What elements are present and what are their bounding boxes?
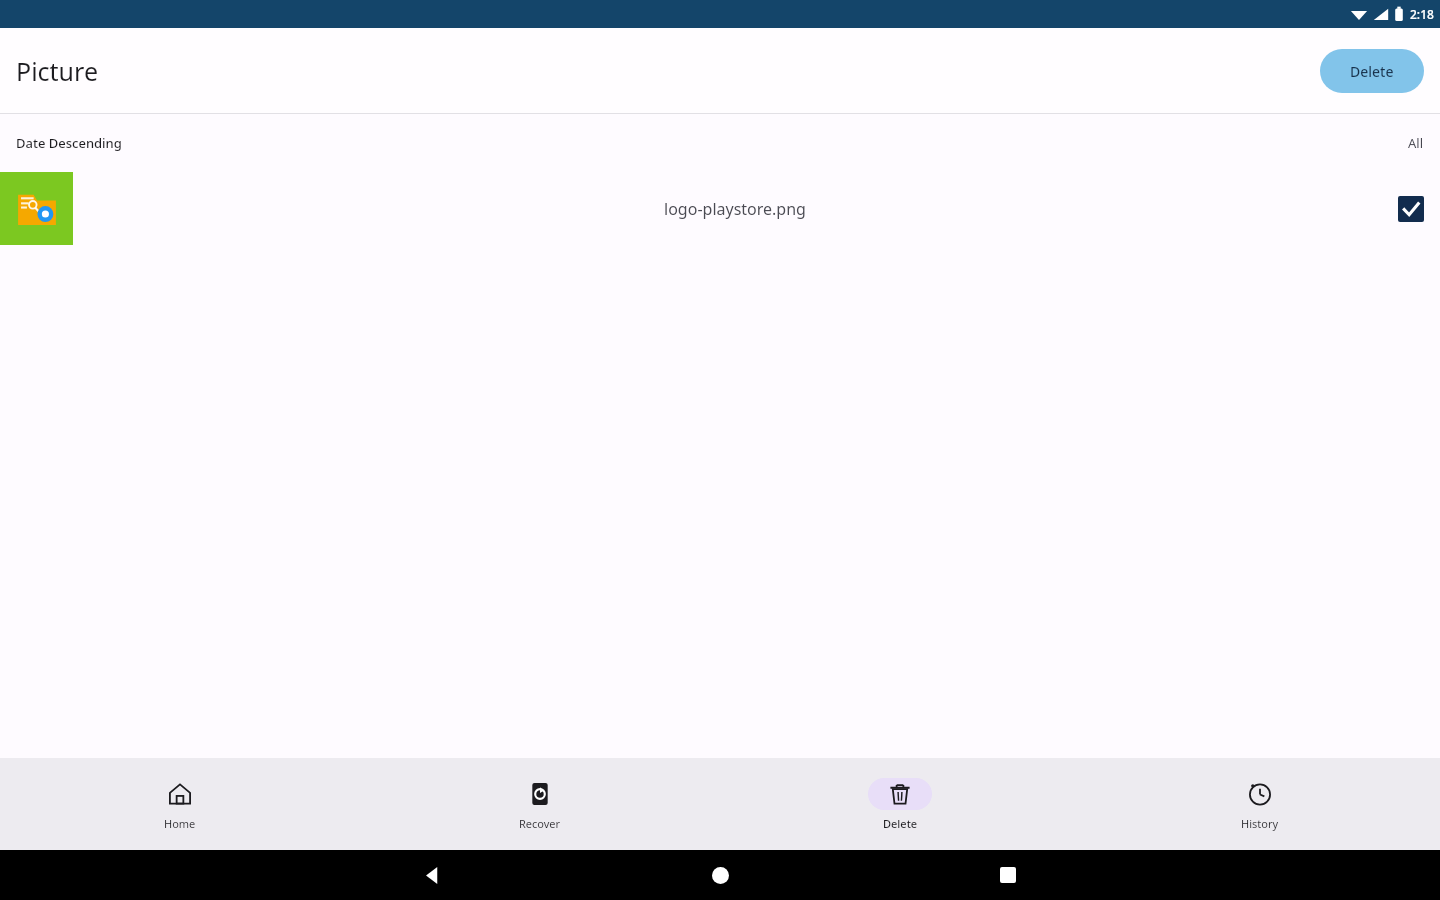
- button[interactable]: Selected: [1398, 196, 1424, 222]
- button[interactable]: logo-playstore.png: [0, 172, 1440, 245]
- button[interactable]: Recent apps: [864, 850, 1152, 900]
- staticText: Recover: [519, 816, 561, 831]
- button[interactable]: Date Descending: [14, 128, 124, 158]
- button[interactable]: Delete: [720, 758, 1080, 850]
- staticText: 2:18: [1410, 6, 1434, 22]
- button[interactable]: All: [1406, 128, 1426, 158]
- button[interactable]: Home: [0, 758, 360, 850]
- button[interactable]: History: [1080, 758, 1440, 850]
- button[interactable]: Delete: [1320, 49, 1424, 93]
- button[interactable]: Recover: [360, 758, 720, 850]
- staticText: History: [1241, 816, 1279, 831]
- staticText: Picture: [16, 54, 98, 88]
- staticText: Delete: [1350, 62, 1394, 81]
- button[interactable]: Back: [288, 850, 576, 900]
- staticText: All: [1408, 134, 1424, 152]
- staticText: Delete: [883, 816, 918, 831]
- staticText: logo-playstore.png: [664, 198, 806, 220]
- staticText: Date Descending: [16, 134, 122, 152]
- staticText: Home: [164, 816, 196, 831]
- button[interactable]: Home: [576, 850, 864, 900]
